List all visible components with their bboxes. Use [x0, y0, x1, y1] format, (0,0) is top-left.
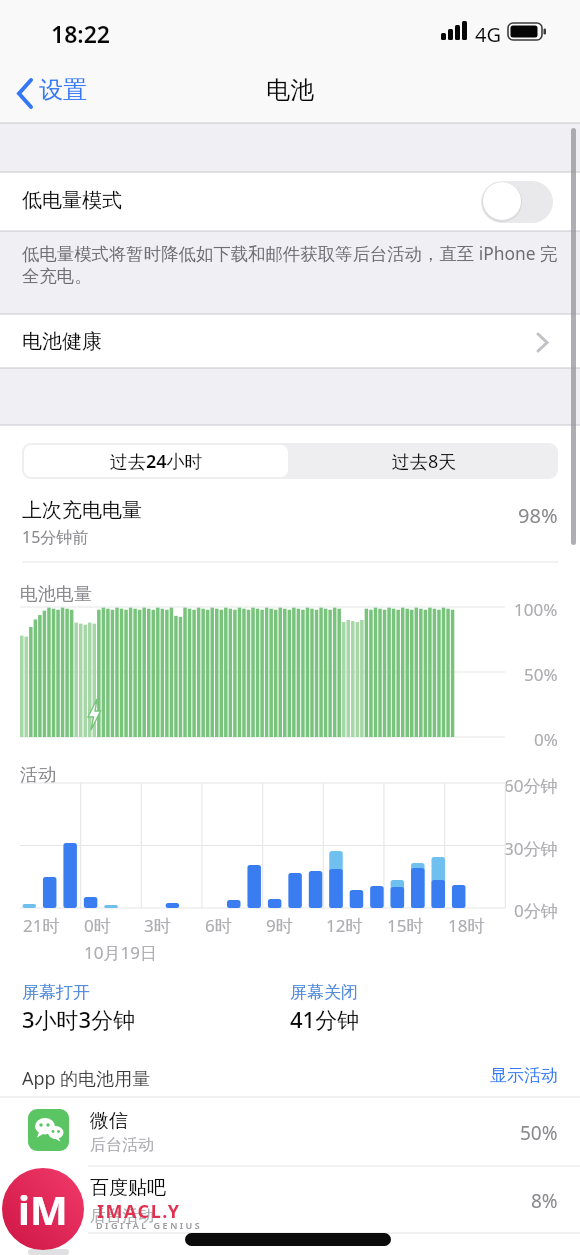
staticText: 18:22 [51, 18, 110, 49]
staticText: 屏幕关闭 [290, 982, 358, 1003]
staticText: 微信 [90, 1109, 128, 1133]
staticText: 0% [534, 728, 558, 751]
button[interactable]: 微信 [0, 1097, 580, 1166]
staticText: 电池健康 [22, 329, 102, 354]
button[interactable]: 过去24小时 [24, 445, 288, 477]
staticText: 0分钟 [514, 899, 558, 922]
staticText: 50% [524, 663, 558, 686]
staticText: IMACL.Y [97, 1199, 181, 1224]
staticText: 屏幕打开 [22, 982, 90, 1003]
button[interactable]: 过去8天 [290, 443, 558, 479]
staticText: 百度贴吧 [90, 1176, 166, 1200]
staticText: App 的电池用量 [22, 1066, 151, 1091]
staticText: 过去24小时 [110, 449, 203, 474]
staticText: 12时 [326, 914, 363, 937]
staticText: 设置 [39, 75, 87, 105]
staticText: 3时 [144, 914, 171, 937]
staticText: 9时 [266, 914, 293, 937]
button[interactable]: 显示活动 [470, 1060, 570, 1090]
staticText: 0时 [84, 914, 111, 937]
staticText: 后台活动 [90, 1206, 154, 1226]
staticText: 3小时3分钟 [22, 1004, 136, 1034]
staticText: 98% [518, 502, 558, 529]
staticText: iM [18, 1182, 68, 1236]
staticText: 15分钟前 [22, 526, 89, 548]
button[interactable]: 电池健康 [0, 314, 580, 368]
staticText: 18时 [448, 914, 485, 937]
staticText: 15时 [387, 914, 424, 937]
staticText: 低电量模式将暂时降低如下载和邮件获取等后台活动，直至 iPhone 完 [22, 241, 558, 265]
staticText: 活动 [20, 764, 56, 787]
staticText: 8% [531, 1188, 558, 1214]
staticText: 全充电。 [22, 265, 92, 287]
staticText: 21时 [23, 914, 60, 937]
staticText: 50% [520, 1120, 558, 1146]
staticText: 100% [514, 598, 558, 621]
staticText: 60分钟 [504, 774, 558, 797]
staticText: 低电量模式 [22, 188, 122, 213]
button[interactable]: 低电量模式 [0, 172, 580, 231]
staticText: 41分钟 [290, 1004, 360, 1034]
staticText: 4G [475, 21, 501, 48]
staticText: 后台活动 [90, 1135, 154, 1155]
staticText: 过去8天 [392, 449, 457, 474]
button[interactable] [481, 181, 553, 223]
staticText: 电池 [266, 75, 314, 105]
staticText: 电池电量 [20, 583, 92, 606]
staticText: 6时 [205, 914, 232, 937]
staticText: DIGITAL GENIUS [96, 1219, 203, 1231]
button[interactable]: 百度贴吧 [0, 1166, 580, 1233]
staticText: 30分钟 [504, 837, 558, 860]
staticText: 10月19日 [84, 941, 157, 964]
staticText: 显示活动 [490, 1065, 558, 1086]
staticText: 上次充电电量 [22, 498, 142, 523]
button[interactable]: 设置 [10, 72, 120, 116]
